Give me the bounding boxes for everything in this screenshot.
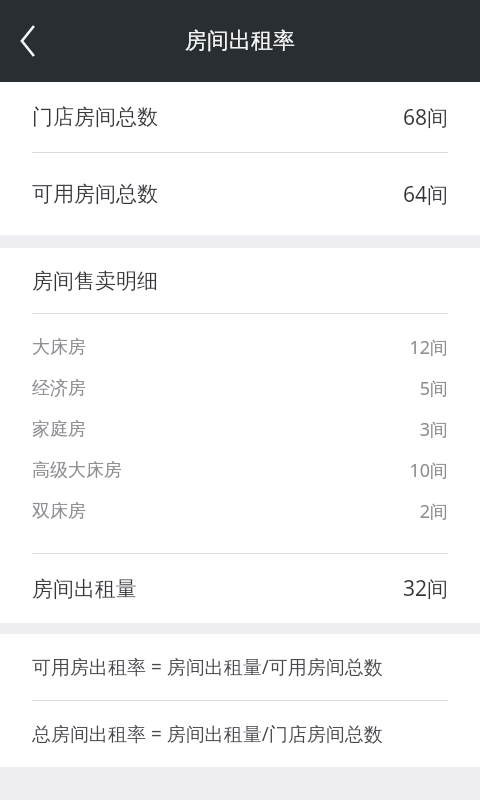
- staticText: 双床房: [32, 500, 86, 523]
- staticText: 房间出租率: [185, 27, 295, 55]
- staticText: 2间: [419, 499, 448, 524]
- staticText: 12间: [409, 335, 448, 360]
- staticText: 5间: [419, 376, 448, 401]
- staticText: 高级大床房: [32, 459, 122, 482]
- staticText: 大床房: [32, 336, 86, 359]
- button[interactable]: 可用房间总数: [0, 153, 480, 235]
- staticText: 10间: [409, 458, 448, 483]
- staticText: 可用房间总数: [32, 181, 158, 207]
- staticText: 家庭房: [32, 418, 86, 441]
- button[interactable]: 双床房: [0, 491, 480, 532]
- staticText: 32间: [402, 574, 448, 603]
- staticText: 房间出租量: [32, 576, 137, 602]
- staticText: 3间: [419, 417, 448, 442]
- staticText: 房间售卖明细: [32, 268, 158, 294]
- button[interactable]: 高级大床房: [0, 450, 480, 491]
- staticText: 经济房: [32, 377, 86, 400]
- staticText: 门店房间总数: [32, 104, 158, 130]
- button[interactable]: 可用房出租率 = 房间出租量/可用房间总数: [0, 634, 480, 700]
- staticText: 68间: [402, 103, 448, 132]
- button[interactable]: Back: [6, 19, 50, 63]
- button[interactable]: 经济房: [0, 368, 480, 409]
- staticText: 总房间出租率 = 房间出租量/门店房间总数: [32, 721, 383, 747]
- button[interactable]: 房间出租量: [0, 554, 480, 623]
- staticText: 可用房出租率 = 房间出租量/可用房间总数: [32, 654, 383, 680]
- button[interactable]: 总房间出租率 = 房间出租量/门店房间总数: [0, 701, 480, 767]
- button[interactable]: 门店房间总数: [0, 82, 480, 152]
- staticText: 64间: [402, 180, 448, 209]
- button[interactable]: 家庭房: [0, 409, 480, 450]
- button[interactable]: 大床房: [0, 327, 480, 368]
